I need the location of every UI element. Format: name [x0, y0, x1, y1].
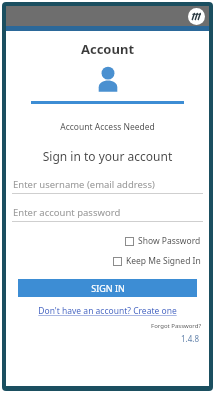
staticText: Don't have an account? Create one	[38, 305, 177, 317]
staticText: Enter account password	[13, 206, 121, 219]
staticText: Sign in to your account	[12, 148, 203, 164]
staticText: Account	[12, 40, 203, 58]
staticText: Keep Me Signed In	[126, 255, 201, 267]
button[interactable]: SIGN IN	[18, 279, 197, 297]
button[interactable]: Don't have an account? Create one	[12, 305, 203, 317]
staticText: Show Password	[138, 235, 201, 247]
staticText: 1.4.8	[12, 333, 199, 344]
button[interactable]: Enter username (email address)	[12, 178, 203, 194]
button[interactable]: Forgot Password?	[151, 322, 203, 330]
button[interactable]: App menu	[188, 8, 205, 25]
button[interactable]: Keep Me Signed In	[12, 255, 203, 267]
button[interactable]: Show Password	[12, 235, 203, 247]
staticText: SIGN IN	[91, 282, 125, 294]
staticText: Forgot Password?	[151, 322, 201, 330]
staticText: Enter username (email address)	[13, 178, 155, 191]
button[interactable]: Enter account password	[12, 206, 203, 222]
staticText: Account Access Needed	[12, 121, 203, 133]
